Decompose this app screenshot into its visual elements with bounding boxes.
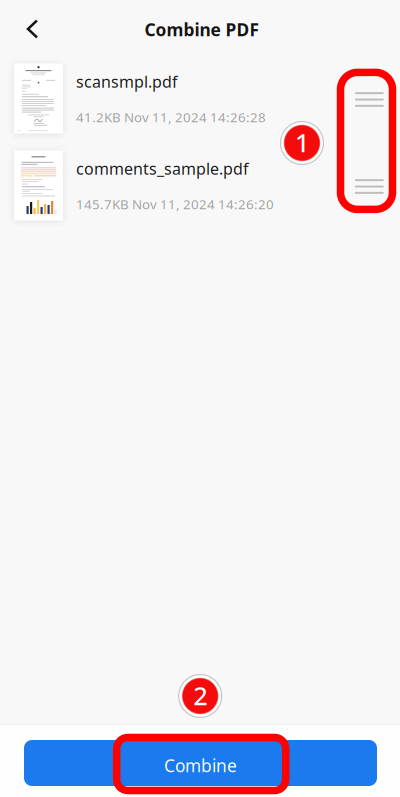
staticText: comments_sample.pdf	[76, 158, 249, 179]
staticText: 41.2KB Nov 11, 2024 14:26:28	[76, 108, 266, 126]
staticText: 2	[193, 679, 207, 712]
staticText: 145.7KB Nov 11, 2024 14:26:20	[76, 195, 274, 213]
staticText: Combine PDF	[144, 18, 259, 41]
staticText: Combine	[164, 754, 237, 777]
button[interactable]: Back	[10, 7, 54, 51]
staticText: 1	[295, 126, 309, 159]
button[interactable]: scansmpl.pdf	[0, 55, 400, 142]
staticText: scansmpl.pdf	[76, 71, 178, 92]
button[interactable]: Combine	[24, 740, 377, 786]
button[interactable]: comments_sample.pdf	[0, 142, 400, 229]
